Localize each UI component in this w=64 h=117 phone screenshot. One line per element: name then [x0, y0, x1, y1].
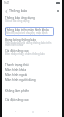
staticText: Không làm phiền — [5, 89, 30, 93]
staticText: Bong bóng thông báo — [5, 38, 36, 42]
button[interactable]: Màn hình người dùng — [2, 78, 62, 83]
button[interactable]: Home — [29, 108, 36, 115]
staticText: Màn hình ngoài — [5, 73, 28, 77]
staticText: Thông báo — [9, 8, 28, 13]
button[interactable]: Back — [12, 108, 19, 115]
staticText: Cài đặt nâng cao — [5, 49, 29, 53]
button[interactable]: Thanh trạng thái — [2, 62, 62, 67]
button[interactable]: Thông báo trên màn hình khóa — [5, 27, 54, 36]
staticText: màn hình khóa — [5, 43, 24, 47]
button[interactable]: Màn hình khóa — [2, 68, 62, 72]
staticText: Màn hình khóa — [5, 68, 27, 72]
staticText: Thanh trạng thái — [5, 63, 29, 67]
staticText: Hiển thị cuộc trò chuyện, mặc định — [5, 31, 48, 35]
staticText: Hiện toàn bộ nội dung thông báo trên — [5, 41, 52, 45]
staticText: Đèn nhấp nháy, chấm thông báo — [5, 52, 45, 56]
button[interactable]: Không làm phiền — [2, 88, 62, 94]
staticText: 9:41 — [4, 1, 10, 5]
staticText: Thông báo trên màn hình khóa — [5, 28, 49, 32]
button[interactable]: Bong bóng thông báo — [2, 37, 62, 47]
button[interactable]: Search — [55, 8, 61, 14]
staticText: Tất cả các ứng dụng — [5, 19, 30, 23]
button[interactable]: Thông báo ứng dụng — [2, 15, 62, 23]
button[interactable]: Recent apps — [45, 108, 52, 115]
button[interactable]: Back — [3, 8, 9, 14]
button[interactable]: Cài đặt nâng cao — [2, 97, 62, 103]
staticText: Cài đặt nâng cao — [5, 98, 29, 102]
button[interactable]: Cài đặt nâng cao — [2, 48, 62, 56]
staticText: Màn hình người dùng — [5, 78, 36, 82]
button[interactable]: Màn hình ngoài — [2, 73, 62, 77]
staticText: Thông báo ứng dụng — [5, 16, 35, 20]
